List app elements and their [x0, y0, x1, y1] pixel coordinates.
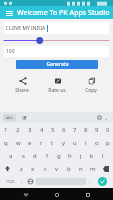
staticText: abc — [6, 115, 13, 120]
button[interactable]: ?123 — [2, 175, 18, 188]
staticText: Rate us — [48, 87, 66, 94]
staticText: n — [79, 165, 83, 173]
staticText: f — [46, 152, 49, 160]
button[interactable]: 5 — [47, 123, 58, 136]
button[interactable]: q — [0, 136, 12, 149]
staticText: p — [106, 139, 110, 147]
staticText: d — [33, 152, 37, 160]
button[interactable]: u — [69, 136, 80, 149]
button[interactable]: f — [41, 149, 53, 162]
button[interactable]: x — [27, 162, 39, 175]
button[interactable]: , — [18, 175, 25, 188]
button[interactable]: h — [64, 149, 75, 162]
button[interactable]: r — [36, 136, 47, 149]
button[interactable]: b — [63, 162, 75, 175]
staticText: 7 — [73, 126, 77, 134]
button[interactable]: abc — [6, 115, 13, 120]
button[interactable] — [4, 36, 109, 45]
button[interactable]: Change language — [25, 175, 36, 188]
button[interactable]: Back — [20, 189, 31, 200]
button[interactable]: Share — [5, 74, 39, 95]
staticText: 6 — [62, 126, 66, 134]
staticText: I LOVE MY INDIA — [6, 25, 46, 32]
button[interactable]: Recent apps — [82, 189, 93, 200]
button[interactable]: n — [75, 162, 87, 175]
button[interactable]: अ — [22, 114, 27, 122]
button[interactable]: 4 — [36, 123, 47, 136]
staticText: Copy — [85, 87, 97, 94]
button[interactable]: 7 — [69, 123, 80, 136]
button[interactable]: c — [39, 162, 51, 175]
staticText: q — [4, 139, 8, 147]
button[interactable]: m — [87, 162, 99, 175]
staticText: y — [62, 139, 66, 147]
button[interactable]: Enter — [94, 175, 111, 188]
button[interactable]: i — [80, 136, 91, 149]
button[interactable]: t — [47, 136, 58, 149]
button[interactable]: 8 — [80, 123, 91, 136]
staticText: u — [73, 139, 77, 147]
staticText: 100 — [6, 48, 15, 55]
staticText: z — [20, 165, 23, 173]
staticText: 8 — [84, 126, 88, 134]
button[interactable]: v — [51, 162, 63, 175]
button[interactable]: 6 — [58, 123, 69, 136]
button[interactable]: 2 — [12, 123, 24, 136]
staticText: s — [22, 152, 25, 160]
button[interactable]: o — [91, 136, 102, 149]
button[interactable]: y — [58, 136, 69, 149]
staticText: x — [31, 165, 35, 173]
staticText: 5 — [51, 126, 55, 134]
button[interactable]: l — [97, 149, 108, 162]
button[interactable]: Backspace — [99, 162, 113, 175]
button[interactable]: p — [102, 136, 113, 149]
button[interactable]: 0 — [102, 123, 113, 136]
staticText: a — [9, 152, 13, 160]
button[interactable]: 9 — [91, 123, 102, 136]
button[interactable]: Settings — [96, 114, 103, 121]
button[interactable]: Generate — [16, 60, 98, 69]
button[interactable]: More options — [103, 114, 110, 121]
button[interactable]: Home — [51, 189, 62, 200]
button[interactable]: 3 — [24, 123, 36, 136]
staticText: , — [21, 178, 23, 185]
button[interactable]: a — [5, 149, 17, 162]
button[interactable]: 1 — [0, 123, 12, 136]
staticText: o — [95, 139, 99, 147]
button[interactable]: I LOVE MY INDIA — [4, 22, 109, 34]
staticText: Generate — [46, 61, 69, 68]
button[interactable]: j — [75, 149, 86, 162]
staticText: Share — [15, 87, 29, 94]
button[interactable]: g — [53, 149, 64, 162]
button[interactable]: Rate us — [40, 74, 74, 95]
staticText: अ — [22, 114, 27, 122]
button[interactable]: w — [12, 136, 24, 149]
staticText: e — [28, 139, 32, 147]
staticText: j — [80, 152, 82, 160]
staticText: 2 — [16, 126, 20, 134]
button[interactable]: . — [86, 175, 94, 188]
button[interactable]: 100 — [4, 46, 109, 57]
staticText: 1 — [4, 126, 8, 134]
staticText: b — [67, 165, 71, 173]
staticText: m — [90, 165, 96, 173]
staticText: w — [16, 139, 21, 147]
staticText: ?123 — [6, 179, 15, 184]
button[interactable]: k — [86, 149, 97, 162]
staticText: ⌄ — [104, 115, 109, 121]
button[interactable]: s — [17, 149, 29, 162]
staticText: 3 — [28, 126, 32, 134]
staticText: Welcome To PK Apps Studio — [17, 8, 110, 18]
button[interactable]: e — [24, 136, 36, 149]
button[interactable]: Open navigation menu — [4, 8, 14, 18]
button[interactable]: Shift — [0, 162, 15, 175]
staticText: v — [55, 165, 59, 173]
staticText: l — [102, 152, 104, 160]
button[interactable]: Copy — [74, 74, 108, 95]
staticText: . — [89, 178, 91, 185]
button[interactable]: z — [15, 162, 27, 175]
button[interactable]: d — [29, 149, 41, 162]
staticText: t — [51, 139, 54, 147]
staticText: g — [57, 152, 61, 160]
